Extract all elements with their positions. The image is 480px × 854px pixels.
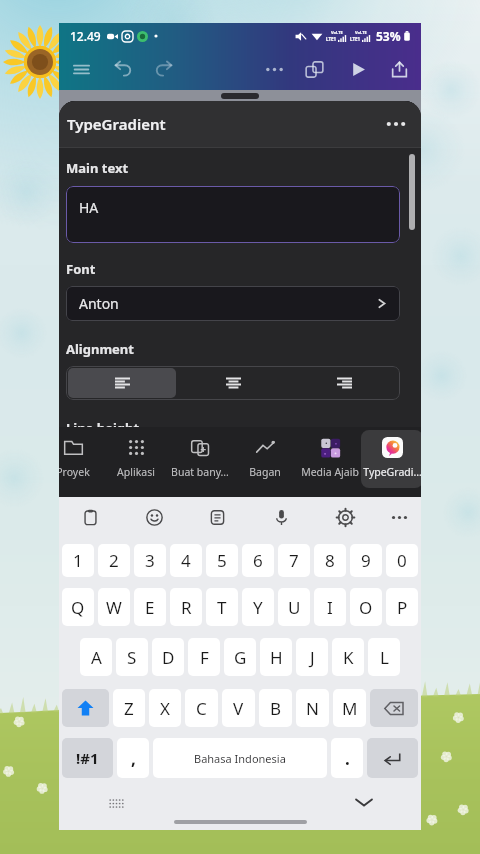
- button[interactable]: 9: [350, 544, 382, 577]
- button[interactable]: Backspace: [370, 689, 418, 727]
- staticText: Y: [253, 596, 263, 619]
- button[interactable]: 2: [98, 544, 130, 577]
- staticText: 12.49: [70, 28, 101, 44]
- staticText: Z: [124, 697, 134, 720]
- button[interactable]: Proyek: [59, 430, 104, 488]
- button[interactable]: Redo: [148, 54, 178, 84]
- button[interactable]: 1: [62, 544, 94, 577]
- staticText: D: [162, 646, 175, 669]
- button[interactable]: Aplikasi: [105, 430, 167, 488]
- staticText: HA: [79, 198, 99, 217]
- button[interactable]: Z: [113, 689, 145, 727]
- staticText: K: [343, 646, 354, 669]
- button[interactable]: K: [332, 638, 364, 676]
- button[interactable]: .: [331, 738, 363, 778]
- button[interactable]: Align center: [180, 368, 287, 398]
- button[interactable]: Drag handle: [221, 93, 259, 99]
- button[interactable]: L: [368, 638, 400, 676]
- button[interactable]: N: [296, 689, 329, 727]
- staticText: L: [380, 646, 389, 669]
- button[interactable]: Export: [384, 54, 414, 84]
- button[interactable]: 4: [170, 544, 202, 577]
- button[interactable]: V: [222, 689, 255, 727]
- button[interactable]: Menu: [66, 54, 96, 84]
- button[interactable]: A: [80, 638, 112, 676]
- staticText: Font: [66, 260, 96, 278]
- button[interactable]: Clipboard: [75, 502, 105, 532]
- staticText: VoLTE: [331, 30, 343, 35]
- button[interactable]: Bagan: [234, 430, 296, 488]
- staticText: .: [345, 747, 350, 770]
- button[interactable]: Bahasa Indonesia: [153, 738, 327, 778]
- staticText: Q: [71, 596, 85, 619]
- button[interactable]: B: [259, 689, 292, 727]
- button[interactable]: Shift: [62, 689, 109, 727]
- button[interactable]: C: [185, 689, 218, 727]
- staticText: LTE1: [326, 36, 337, 42]
- button[interactable]: Y: [242, 588, 274, 626]
- staticText: VoLTE: [355, 30, 367, 35]
- button[interactable]: More options: [259, 54, 289, 84]
- staticText: C: [196, 697, 207, 720]
- button[interactable]: Play: [343, 54, 373, 84]
- button[interactable]: Anton: [66, 286, 400, 321]
- button[interactable]: D: [152, 638, 184, 676]
- button[interactable]: S: [116, 638, 148, 676]
- button[interactable]: HA: [66, 186, 400, 243]
- button[interactable]: Emoji: [139, 502, 169, 532]
- button[interactable]: U: [278, 588, 310, 626]
- button[interactable]: 6: [242, 544, 274, 577]
- button[interactable]: E: [134, 588, 166, 626]
- button[interactable]: Undo: [108, 54, 138, 84]
- button[interactable]: Q: [62, 588, 94, 626]
- button[interactable]: X: [149, 689, 181, 727]
- staticText: Bahasa Indonesia: [194, 751, 286, 766]
- button[interactable]: G: [224, 638, 256, 676]
- staticText: T: [217, 596, 227, 619]
- staticText: V: [233, 697, 244, 720]
- staticText: E: [145, 596, 155, 619]
- staticText: 8: [325, 549, 335, 572]
- button[interactable]: F: [188, 638, 220, 676]
- staticText: J: [310, 646, 315, 669]
- button[interactable]: 3: [134, 544, 166, 577]
- button[interactable]: W: [98, 588, 130, 626]
- button[interactable]: H: [260, 638, 292, 676]
- button[interactable]: Keyboard layout: [105, 794, 127, 812]
- staticText: 7: [289, 549, 299, 572]
- button[interactable]: Settings: [330, 502, 360, 532]
- button[interactable]: I: [314, 588, 346, 626]
- button[interactable]: 5: [206, 544, 238, 577]
- staticText: 6: [253, 549, 263, 572]
- staticText: Line height: [66, 419, 140, 437]
- button[interactable]: !#1: [62, 738, 113, 778]
- button[interactable]: J: [296, 638, 328, 676]
- button[interactable]: 7: [278, 544, 310, 577]
- button[interactable]: Enter: [367, 738, 418, 778]
- staticText: !#1: [76, 748, 99, 768]
- button[interactable]: T: [206, 588, 238, 626]
- button[interactable]: Media Ajaib: [299, 430, 361, 488]
- button[interactable]: M: [333, 689, 366, 727]
- staticText: P: [397, 596, 408, 619]
- button[interactable]: Voice input: [266, 502, 296, 532]
- button[interactable]: 8: [314, 544, 346, 577]
- staticText: R: [181, 596, 192, 619]
- button[interactable]: ,: [117, 738, 149, 778]
- button[interactable]: P: [386, 588, 418, 626]
- button[interactable]: More: [384, 502, 414, 532]
- button[interactable]: Hide keyboard: [351, 790, 377, 814]
- button[interactable]: Align left: [68, 368, 176, 398]
- staticText: 1: [73, 549, 83, 572]
- staticText: I: [327, 596, 333, 619]
- button[interactable]: R: [170, 588, 202, 626]
- button[interactable]: Stickers: [202, 502, 232, 532]
- button[interactable]: More options: [381, 109, 411, 139]
- button[interactable]: Transform: [299, 54, 329, 84]
- button[interactable]: TypeGradi…: [361, 430, 421, 488]
- button[interactable]: 0: [386, 544, 418, 577]
- button[interactable]: Buat bany…: [169, 430, 231, 488]
- staticText: Buat bany…: [171, 465, 229, 479]
- button[interactable]: O: [350, 588, 382, 626]
- button[interactable]: Align right: [291, 368, 398, 398]
